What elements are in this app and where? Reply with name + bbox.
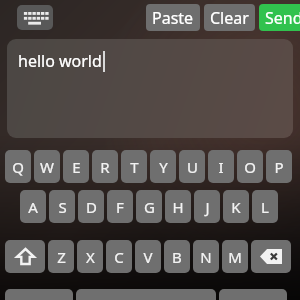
staticText: F [116,197,124,217]
button[interactable]: Y [150,150,176,183]
staticText: Z [57,247,66,267]
button[interactable]: R [92,150,118,183]
staticText: Clear [210,7,249,29]
button[interactable]: X [77,240,103,273]
button[interactable]: N [193,240,219,273]
staticText: Paste [152,7,194,29]
button[interactable]: D [78,190,104,223]
staticText: S [58,197,67,217]
staticText: Send [265,7,300,29]
button[interactable]: Switch keyboard [17,5,53,30]
staticText: O [244,157,256,177]
button[interactable]: Enter [219,289,287,300]
button[interactable]: E [63,150,89,183]
button[interactable]: K [223,190,249,223]
button[interactable]: Backspace [251,240,291,273]
staticText: J [205,197,210,217]
staticText: V [143,247,153,267]
staticText: C [114,247,124,267]
button[interactable]: Clear [204,4,255,31]
button[interactable]: V [135,240,161,273]
button[interactable]: G [136,190,162,223]
staticText: W [40,157,54,177]
staticText: L [261,197,269,217]
button[interactable]: P [266,150,292,183]
staticText: P [274,157,284,177]
staticText: H [172,197,184,217]
staticText: hello world [18,50,102,72]
staticText: K [231,197,241,217]
button[interactable]: B [164,240,190,273]
button[interactable]: M [222,240,248,273]
staticText: X [86,247,95,267]
button[interactable]: O [237,150,263,183]
button[interactable]: J [194,190,220,223]
staticText: D [86,197,97,217]
staticText: B [172,247,182,267]
button[interactable]: Z [48,240,74,273]
staticText: I [218,157,224,177]
button[interactable]: F [107,190,133,223]
staticText: E [72,157,81,177]
button[interactable]: hello world [7,39,293,138]
button[interactable]: Shift [5,240,45,273]
button[interactable]: Symbols [5,289,73,300]
button[interactable]: I [208,150,234,183]
staticText: N [200,247,212,267]
button[interactable]: H [165,190,191,223]
staticText: U [187,157,198,177]
button[interactable]: A [20,190,46,223]
staticText: Y [159,157,168,177]
staticText: M [228,247,242,267]
button[interactable]: Paste [146,4,200,31]
staticText: Q [12,157,24,177]
button[interactable]: C [106,240,132,273]
staticText: A [28,197,38,217]
button[interactable]: L [252,190,278,223]
button[interactable]: U [179,150,205,183]
button[interactable]: Space [76,289,216,300]
button[interactable]: W [34,150,60,183]
button[interactable]: Q [5,150,31,183]
staticText: T [130,157,139,177]
button[interactable]: S [49,190,75,223]
button[interactable]: Send [259,4,300,31]
button[interactable]: T [121,150,147,183]
staticText: R [100,157,110,177]
staticText: G [144,197,155,217]
